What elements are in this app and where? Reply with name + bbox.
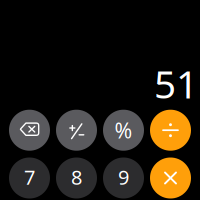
button[interactable]: Plus or minus xyxy=(53,109,100,151)
staticText: % xyxy=(114,116,132,144)
button[interactable]: 7 xyxy=(6,157,53,199)
staticText: 7 xyxy=(24,164,35,190)
staticText: 8 xyxy=(71,164,82,190)
staticText: 51 xyxy=(154,58,198,109)
button[interactable]: 8 xyxy=(53,157,100,199)
staticText: 9 xyxy=(118,164,129,190)
button[interactable]: % xyxy=(100,109,147,151)
button[interactable]: Divide xyxy=(147,109,194,151)
button[interactable]: Multiply xyxy=(147,157,194,199)
button[interactable]: Delete xyxy=(6,109,53,151)
button[interactable]: 9 xyxy=(100,157,147,199)
